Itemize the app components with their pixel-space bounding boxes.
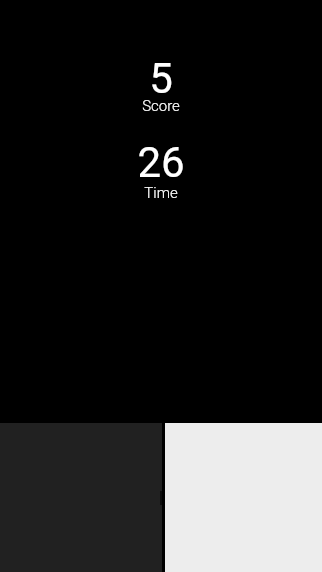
staticText: Score — [0, 97, 322, 115]
staticText: Time — [0, 184, 322, 202]
staticText: 26 — [0, 138, 322, 187]
staticText: 5 — [0, 54, 322, 103]
